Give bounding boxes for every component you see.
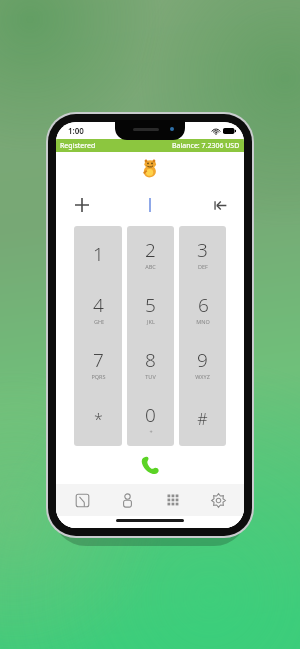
staticText: 9 (197, 347, 208, 373)
staticText: TUV (145, 373, 156, 380)
staticText: 6 (198, 292, 209, 318)
staticText: 8 (145, 347, 156, 373)
staticText: Balance: 7.2306 USD (172, 141, 240, 151)
button[interactable]: # (179, 391, 226, 446)
button[interactable]: Call (135, 451, 165, 481)
staticText: 1:00 (68, 125, 84, 136)
button[interactable]: 3 (179, 226, 226, 281)
button[interactable]: 2 (127, 226, 174, 281)
staticText: 7 (93, 347, 104, 373)
button[interactable]: 1 (74, 226, 122, 281)
button[interactable]: Add contact (70, 193, 94, 217)
staticText: 2 (145, 237, 156, 263)
staticText: # (197, 408, 208, 430)
staticText: DEF (198, 263, 208, 270)
button[interactable]: Keypad (153, 485, 193, 515)
button[interactable]: 0 (127, 391, 174, 446)
button[interactable]: Settings (198, 485, 238, 515)
staticText: JKL (147, 318, 155, 325)
button[interactable]: 9 (179, 336, 226, 391)
staticText: + (149, 428, 153, 435)
staticText: ABC (145, 263, 156, 270)
staticText: 0 (145, 402, 156, 428)
staticText: 1 (93, 241, 104, 267)
staticText: 3 (197, 237, 208, 263)
staticText: GHI (94, 318, 104, 325)
button[interactable]: 6 (179, 281, 226, 336)
button[interactable]: Backspace (208, 193, 232, 217)
button[interactable]: 8 (127, 336, 174, 391)
staticText: WXYZ (195, 373, 210, 380)
staticText: Registered (60, 141, 96, 151)
staticText: PQRS (91, 373, 106, 380)
staticText: 5 (145, 292, 156, 318)
staticText: * (94, 408, 103, 430)
button[interactable]: 5 (127, 281, 174, 336)
staticText: MNO (196, 318, 210, 325)
button[interactable]: Contacts (107, 485, 147, 515)
button[interactable]: 7 (74, 336, 122, 391)
button[interactable]: * (74, 391, 122, 446)
button[interactable]: Recents (62, 485, 102, 515)
button[interactable]: 4 (74, 281, 122, 336)
staticText: 4 (93, 292, 104, 318)
